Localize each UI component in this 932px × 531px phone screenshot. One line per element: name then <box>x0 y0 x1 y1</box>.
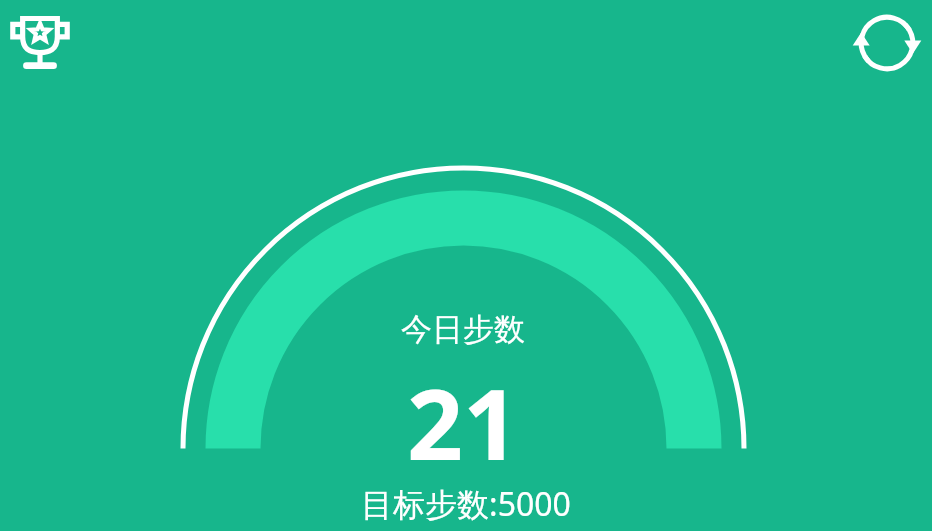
button[interactable]: Achievements <box>6 12 74 74</box>
staticText: 今日步数 <box>263 310 663 354</box>
button[interactable]: Refresh <box>858 14 916 72</box>
staticText: 目标步数:5000 <box>216 482 716 526</box>
staticText: 21 <box>213 356 713 460</box>
